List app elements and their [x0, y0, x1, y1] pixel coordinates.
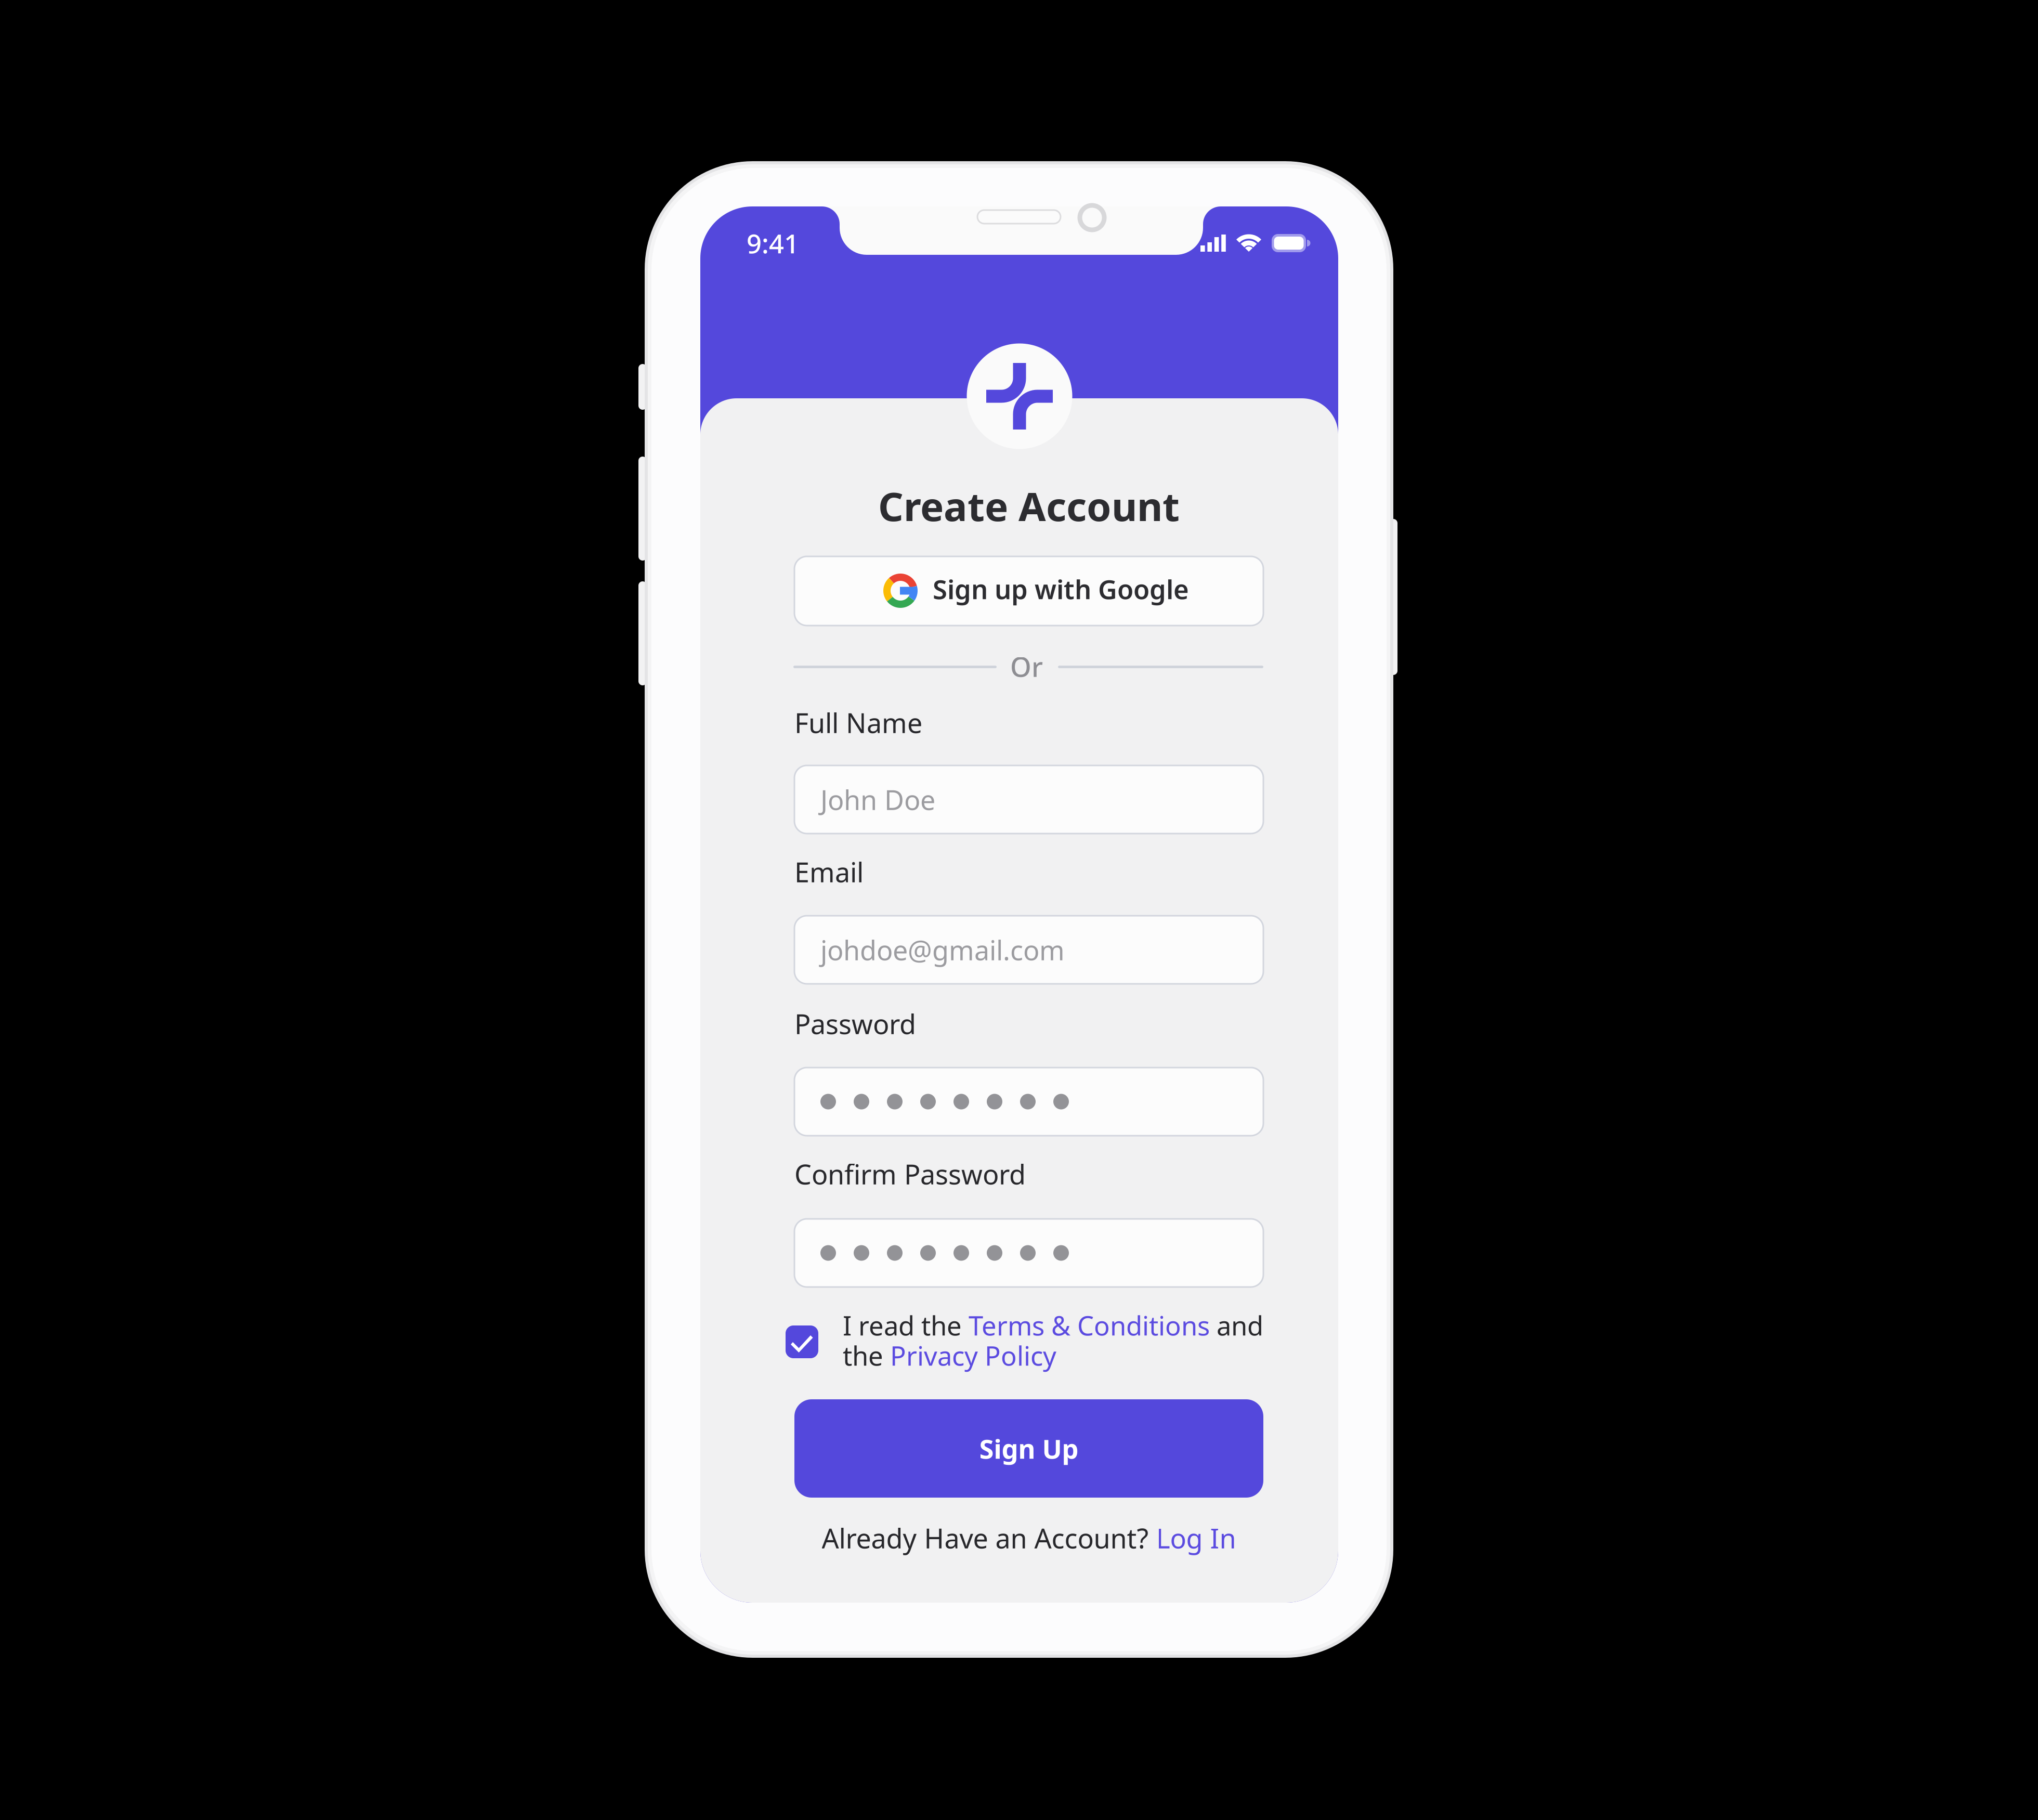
staticText: Log In — [1156, 1520, 1236, 1556]
staticText: Email — [794, 854, 864, 890]
staticText: John Doe — [820, 782, 935, 817]
staticText: Create Account — [878, 479, 1180, 532]
staticText: Or — [1010, 648, 1043, 684]
staticText: 9:41 — [747, 226, 799, 261]
staticText: I read the — [843, 1308, 969, 1343]
staticText: Already Have an Account? — [822, 1520, 1156, 1556]
button[interactable]: Sign up with Google — [794, 556, 1263, 626]
button[interactable]: Log In — [1156, 1520, 1236, 1556]
staticText: Privacy Policy — [890, 1338, 1056, 1373]
button[interactable]: Sign Up — [794, 1399, 1263, 1498]
staticText: Sign Up — [979, 1431, 1079, 1466]
staticText: Confirm Password — [794, 1156, 1026, 1192]
staticText: Terms & Conditions — [969, 1308, 1210, 1343]
staticText: and — [1210, 1308, 1263, 1343]
staticText: Password — [794, 1006, 916, 1042]
staticText: the — [843, 1338, 890, 1373]
button[interactable]: Accept terms and conditions — [786, 1325, 818, 1358]
staticText: johdoe@gmail.com — [820, 932, 1065, 968]
staticText: Full Name — [794, 705, 922, 741]
staticText: Sign up with Google — [933, 571, 1189, 606]
